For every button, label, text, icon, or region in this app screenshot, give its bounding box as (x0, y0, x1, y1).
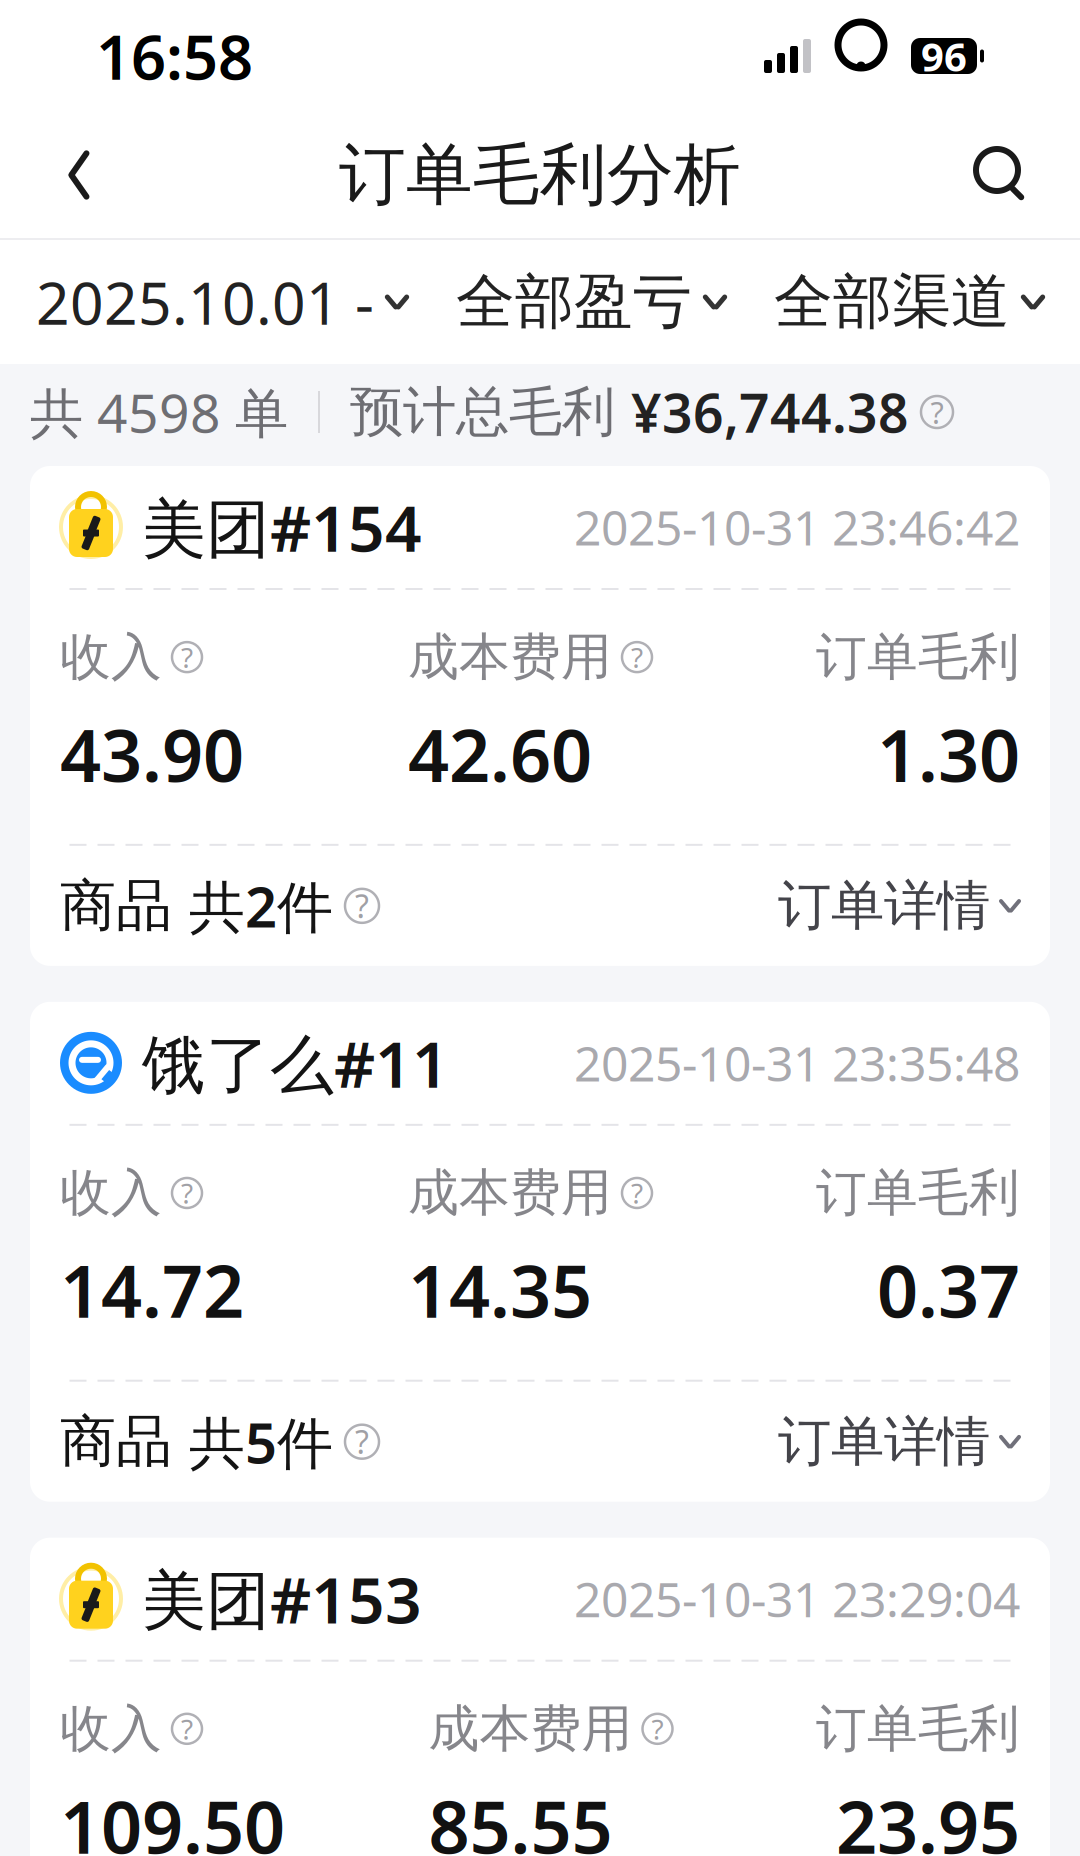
staticText: 订单毛利 (816, 626, 1020, 688)
button[interactable]: 2025.10.01 - (36, 249, 408, 355)
staticText: 订单毛利 (816, 1162, 1020, 1224)
button[interactable]: 全部渠道 (774, 252, 1044, 352)
staticText: 2025-10-31 23:35:48 (574, 1031, 1020, 1095)
button[interactable]: 美团#153 (30, 1538, 1050, 1856)
staticText: 商品 (60, 871, 189, 940)
staticText: 14.72 (60, 1242, 244, 1338)
staticText: 订单详情 (778, 873, 990, 939)
staticText: ? (631, 1174, 643, 1212)
staticText: 2025.10.01 - (36, 263, 374, 341)
staticText: 成本费用 (428, 1698, 632, 1760)
staticText: 成本费用 (408, 1162, 612, 1224)
button[interactable]: 搜索 (946, 120, 1056, 230)
staticText: 饿了么#11 (142, 1020, 449, 1105)
staticText: 1.30 (877, 706, 1020, 802)
staticText: ? (930, 392, 943, 432)
staticText: 收入 (60, 626, 162, 688)
staticText: 85.55 (428, 1778, 612, 1856)
staticText: 共5件 (189, 1404, 333, 1479)
staticText: 14.35 (408, 1242, 592, 1338)
staticText: 收入 (60, 1698, 162, 1760)
staticText: 全部盈亏 (456, 266, 692, 338)
staticText: 2025-10-31 23:29:04 (574, 1567, 1020, 1630)
button[interactable]: 饿了么#11 (30, 1002, 1050, 1502)
staticText: 收入 (60, 1162, 162, 1224)
staticText: 订单毛利 (816, 1698, 1020, 1760)
staticText: 2025-10-31 23:46:42 (574, 495, 1020, 559)
button[interactable]: 返回 (24, 120, 134, 230)
staticText: 共2件 (189, 869, 333, 943)
staticText: ? (181, 638, 193, 676)
staticText: 109.50 (60, 1778, 285, 1856)
staticText: ? (355, 1420, 369, 1463)
staticText: 16:58 (96, 15, 253, 97)
staticText: ? (631, 638, 643, 676)
staticText: 96 (921, 29, 967, 82)
staticText: 订单毛利分析 (339, 134, 741, 216)
staticText: 美团#154 (142, 484, 422, 569)
button[interactable]: 全部盈亏 (456, 252, 726, 352)
staticText: 成本费用 (408, 626, 612, 688)
button[interactable]: 美团#154 (30, 466, 1050, 966)
staticText: ? (355, 885, 369, 927)
staticText: 预计总毛利 (350, 379, 631, 445)
staticText: 商品 (60, 1407, 189, 1476)
staticText: ¥36,744.38 (631, 377, 909, 447)
staticText: ? (651, 1710, 663, 1747)
staticText: ? (181, 1710, 193, 1747)
staticText: 23.95 (836, 1778, 1020, 1856)
staticText: 全部渠道 (774, 266, 1010, 338)
staticText: 订单详情 (778, 1409, 990, 1474)
staticText: 共 4598 单 (30, 377, 288, 447)
staticText: 42.60 (408, 706, 592, 802)
staticText: 0.37 (877, 1242, 1020, 1338)
staticText: 43.90 (60, 706, 244, 802)
staticText: ? (181, 1174, 193, 1212)
staticText: 美团#153 (142, 1556, 422, 1641)
